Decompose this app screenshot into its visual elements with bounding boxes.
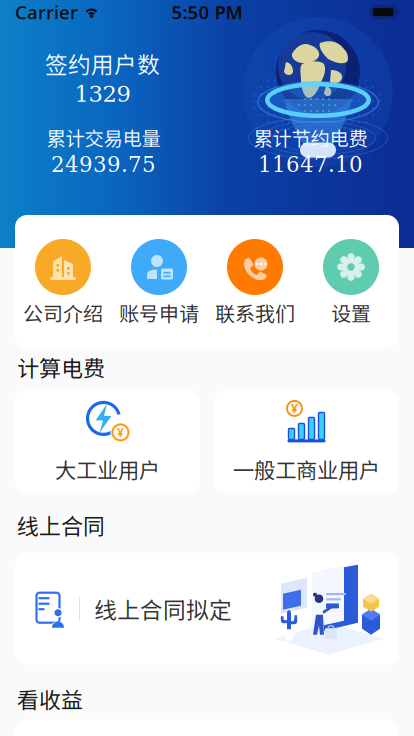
staticText: 公司介绍 (23, 298, 103, 327)
staticText: 5:50 PM (171, 0, 242, 24)
staticText: 累计交易电量 (46, 123, 160, 151)
staticText: 线上合同 (17, 509, 105, 541)
button[interactable]: 账号申请 (111, 215, 207, 348)
staticText: 设置 (331, 298, 371, 327)
staticText: 账号申请 (119, 298, 199, 327)
staticText: 看收益 (17, 683, 83, 715)
button[interactable]: 线上合同拟定 (15, 553, 399, 665)
staticText: ¥ (291, 400, 298, 416)
staticText: Carrier (15, 0, 78, 24)
staticText: 计算电费 (17, 351, 105, 383)
button[interactable]: 设置 (303, 215, 399, 348)
staticText: 签约用户数 (45, 47, 160, 80)
staticText: 11647.10 (258, 152, 363, 177)
staticText: 联系我们 (215, 298, 295, 327)
staticText: 24939.75 (51, 152, 156, 177)
button[interactable]: 联系我们 (207, 215, 303, 348)
staticText: 一般工商业用户 (233, 453, 380, 484)
staticText: ¥ (117, 424, 124, 440)
staticText: 累计节约电费 (253, 123, 367, 151)
button[interactable]: ¥ (15, 391, 200, 493)
staticText: 1329 (74, 81, 130, 107)
button[interactable]: ¥ (214, 391, 399, 493)
button[interactable]: 公司介绍 (15, 215, 111, 348)
staticText: 大工业用户 (55, 453, 160, 484)
staticText: 线上合同拟定 (94, 592, 232, 625)
